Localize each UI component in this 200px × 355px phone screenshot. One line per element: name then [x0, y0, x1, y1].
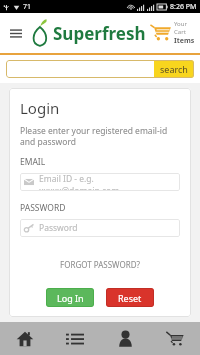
staticText: search [160, 63, 188, 75]
staticText: PASSWORD [20, 202, 66, 214]
staticText: Your [174, 20, 187, 28]
staticText: Cart [174, 28, 186, 36]
button[interactable]: Home [0, 322, 50, 355]
button[interactable]: search [154, 60, 194, 78]
button[interactable]: Email ID - e.g. xxxxx@domain.com [20, 173, 180, 191]
button[interactable]: Your [150, 20, 195, 46]
button[interactable]: Log In [46, 288, 94, 307]
staticText: Email ID - e.g. xxxxx@domain.com [39, 173, 176, 191]
staticText: EMAIL [20, 156, 46, 168]
staticText: Items [174, 36, 195, 46]
staticText: 8:26 PM [170, 2, 197, 12]
button[interactable]: Reset [106, 288, 154, 307]
staticText: FORGOT PASSWORD? [60, 259, 140, 270]
button[interactable]: FORGOT PASSWORD? [58, 257, 142, 272]
button[interactable]: Account [100, 322, 150, 355]
staticText: Login [20, 98, 60, 118]
button[interactable] [6, 60, 154, 78]
staticText: Superfresh [53, 22, 146, 45]
staticText: 71 [23, 2, 32, 12]
staticText: Reset [118, 292, 142, 304]
button[interactable]: Categories [50, 322, 100, 355]
staticText: Password [39, 222, 78, 234]
button[interactable]: Cart [150, 322, 200, 355]
staticText: Log In [57, 292, 84, 304]
button[interactable]: Password [20, 219, 180, 237]
button[interactable]: Open navigation menu [5, 22, 27, 44]
staticText: Please enter your registered email-id an… [20, 125, 180, 147]
